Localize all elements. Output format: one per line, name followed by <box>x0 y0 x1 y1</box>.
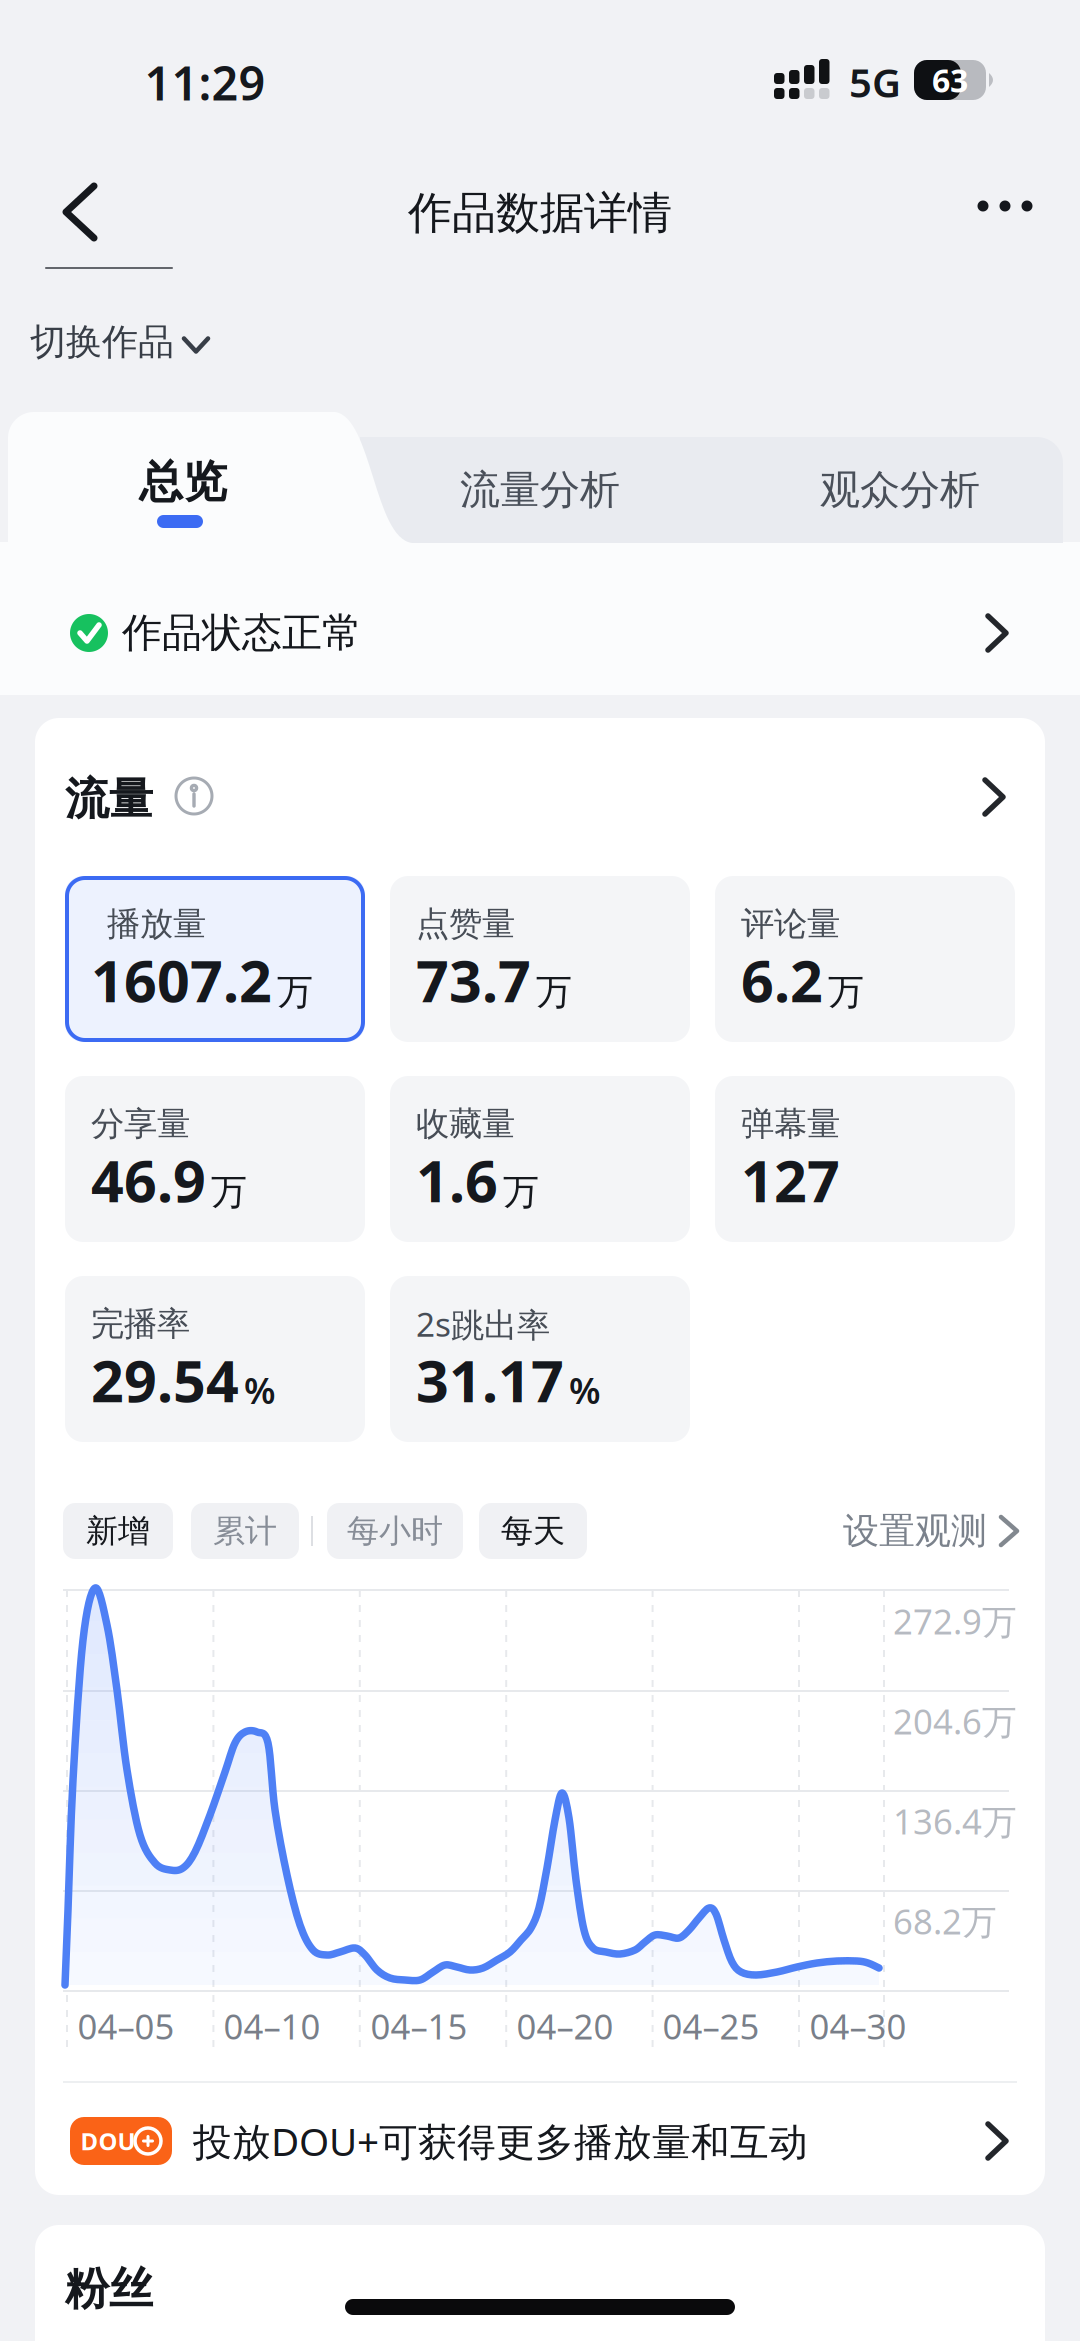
button[interactable]: 流量 <box>35 750 1045 845</box>
button[interactable]: 播放量 <box>65 876 365 1042</box>
staticText: 万 <box>277 970 313 1014</box>
button[interactable]: 2s跳出率 <box>390 1276 690 1442</box>
button[interactable]: 完播率 <box>65 1276 365 1442</box>
button[interactable]: 分享量 <box>65 1076 365 1242</box>
staticText: 万 <box>503 1170 539 1214</box>
staticText: 11:29 <box>144 51 265 113</box>
staticText: 46.9 <box>91 1142 206 1218</box>
staticText: 68.2万 <box>893 1898 997 1944</box>
staticText: 04–15 <box>370 2003 467 2049</box>
staticText: 136.4万 <box>893 1798 1017 1844</box>
staticText: 点赞量 <box>416 903 515 944</box>
staticText: 5G <box>849 55 901 108</box>
staticText: 04–25 <box>662 2003 759 2049</box>
staticText: 万 <box>828 970 864 1014</box>
staticText: 73.7 <box>416 942 531 1018</box>
button[interactable]: 更多 <box>960 176 1050 236</box>
staticText: 6.2 <box>741 942 823 1018</box>
staticText: 万 <box>536 970 572 1014</box>
button[interactable]: DOU <box>35 2100 1045 2182</box>
button[interactable]: 设置观测 <box>777 1503 1017 1559</box>
button[interactable]: 评论量 <box>715 876 1015 1042</box>
staticText: 累计 <box>213 1511 277 1551</box>
staticText: 每天 <box>501 1511 565 1551</box>
staticText: DOU <box>80 2125 135 2157</box>
staticText: 每小时 <box>347 1511 443 1551</box>
staticText: 流量 <box>65 772 153 826</box>
staticText: 04–30 <box>809 2003 906 2049</box>
staticText: 新增 <box>86 1511 150 1551</box>
button[interactable]: 流量分析 <box>390 437 690 543</box>
staticText: 04–05 <box>77 2003 174 2049</box>
button[interactable]: 累计 <box>191 1503 299 1559</box>
staticText: 2s跳出率 <box>416 1302 550 1346</box>
staticText: 作品状态正常 <box>122 608 362 657</box>
staticText: % <box>244 1366 276 1414</box>
button[interactable]: 每天 <box>479 1503 587 1559</box>
staticText: 总览 <box>139 455 227 509</box>
staticText: 31.17 <box>416 1342 564 1418</box>
staticText: 63 <box>932 59 968 101</box>
staticText: 粉丝 <box>65 2262 153 2316</box>
button[interactable]: 弹幕量 <box>715 1076 1015 1242</box>
staticText: 分享量 <box>91 1103 190 1144</box>
staticText: 04–20 <box>516 2003 613 2049</box>
button[interactable]: 作品状态正常 <box>0 585 1080 685</box>
staticText: 收藏量 <box>416 1103 515 1144</box>
staticText: 流量分析 <box>460 465 620 514</box>
staticText: 完播率 <box>91 1303 190 1344</box>
button[interactable]: 点赞量 <box>390 876 690 1042</box>
staticText: 04–10 <box>223 2003 320 2049</box>
staticText: 作品数据详情 <box>408 186 672 240</box>
staticText: 29.54 <box>91 1342 239 1418</box>
staticText: 204.6万 <box>893 1698 1017 1744</box>
button[interactable]: 新增 <box>63 1503 173 1559</box>
staticText: 1.6 <box>416 1142 498 1218</box>
staticText: 弹幕量 <box>741 1103 840 1144</box>
staticText: 切换作品 <box>30 320 174 364</box>
button[interactable]: 切换作品 <box>30 316 270 368</box>
button[interactable]: 总览 <box>8 412 368 543</box>
staticText: 1607.2 <box>91 942 272 1018</box>
staticText: 评论量 <box>741 903 840 944</box>
staticText: 设置观测 <box>843 1509 987 1553</box>
button[interactable]: 收藏量 <box>390 1076 690 1242</box>
staticText: 观众分析 <box>820 465 980 514</box>
button[interactable]: 观众分析 <box>740 437 1060 543</box>
staticText: 播放量 <box>107 903 206 944</box>
staticText: 万 <box>211 1170 247 1214</box>
staticText: % <box>569 1366 601 1414</box>
staticText: 127 <box>741 1142 840 1218</box>
button[interactable]: 返回 <box>40 172 120 252</box>
staticText: 投放DOU+可获得更多播放量和互动 <box>193 2115 808 2167</box>
staticText: 272.9万 <box>893 1598 1017 1644</box>
button[interactable]: 每小时 <box>327 1503 463 1559</box>
